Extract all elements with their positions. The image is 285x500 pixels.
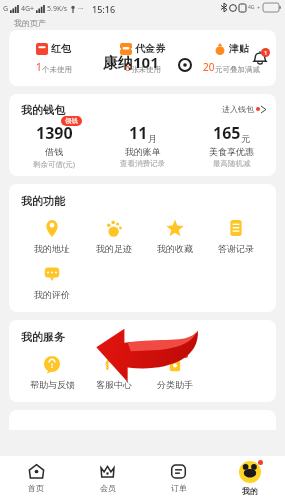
staticText: 领钱	[65, 117, 78, 125]
staticText: 4G	[248, 4, 255, 11]
staticText: 15:16	[92, 3, 116, 15]
staticText: 我的	[242, 486, 258, 496]
staticText: 首页	[28, 483, 44, 493]
staticText: 答谢记录	[218, 243, 254, 254]
staticText: 分类助手	[157, 379, 193, 390]
staticText: 5.9K/s	[47, 4, 68, 14]
staticText: 个未使用	[42, 65, 72, 74]
staticText: 借钱	[45, 146, 63, 157]
staticText: 我的地址	[34, 243, 70, 254]
staticText: ···	[78, 4, 84, 14]
staticText: 张未使用	[131, 65, 161, 74]
staticText: 剩余可借(元)	[33, 159, 75, 169]
button[interactable]: 进入钱包	[222, 104, 266, 114]
staticText: 我的钱包	[21, 103, 65, 117]
button[interactable]: 我的	[214, 456, 285, 500]
button[interactable]: 我的评价	[21, 264, 82, 300]
staticText: +	[257, 4, 261, 12]
staticText: 进入钱包	[222, 104, 254, 114]
staticText: 客服中心	[96, 379, 132, 390]
staticText: 康纳101	[103, 52, 159, 72]
staticText: 元	[241, 133, 250, 144]
staticText: 红包	[51, 42, 71, 55]
staticText: 1	[36, 60, 42, 74]
staticText: 我的页产	[14, 18, 46, 28]
staticText: G	[3, 4, 9, 14]
staticText: 1	[264, 49, 268, 57]
staticText: 8	[125, 60, 131, 74]
staticText: 月	[148, 133, 157, 144]
staticText: 1390	[36, 122, 73, 144]
staticText: 20	[203, 60, 215, 74]
staticText: 165	[213, 122, 241, 144]
button[interactable]: 帮助与反馈	[21, 354, 83, 390]
staticText: 订单	[171, 483, 187, 493]
button[interactable]: 首页	[0, 456, 72, 500]
staticText: 会员	[100, 483, 116, 493]
button[interactable]: 我的足迹	[83, 218, 144, 254]
staticText: 我的评价	[34, 289, 70, 300]
button[interactable]: 我的地址	[21, 218, 83, 254]
button[interactable]: 11	[98, 122, 187, 168]
button[interactable]: 分类助手	[144, 354, 205, 390]
button[interactable]: 客服中心	[83, 354, 144, 390]
staticText: 我的账单	[125, 146, 161, 157]
button[interactable]: 订单	[143, 456, 214, 500]
button[interactable]: 津贴	[187, 30, 276, 86]
button[interactable]: 红包	[9, 30, 98, 86]
staticText: 元可叠加满减	[215, 65, 260, 74]
staticText: 帮助与反馈	[30, 379, 75, 390]
staticText: 4G+	[21, 4, 35, 14]
staticText: 我的功能	[21, 194, 65, 208]
staticText: 查看消费记录	[120, 159, 165, 168]
staticText: 我的收藏	[157, 243, 193, 254]
staticText: 我的足迹	[96, 243, 132, 254]
button[interactable]: 165	[187, 122, 276, 168]
button[interactable]: 答谢记录	[205, 218, 266, 254]
staticText: 美食享优惠	[209, 146, 254, 157]
staticText: 津贴	[229, 42, 249, 55]
button[interactable]: 我的收藏	[144, 218, 205, 254]
staticText: 代金券	[135, 42, 165, 55]
staticText: 11	[129, 122, 148, 144]
staticText: 最高随机减	[213, 159, 251, 168]
staticText: 我的服务	[21, 330, 65, 344]
button[interactable]: 代金券	[98, 30, 187, 86]
button[interactable]: 会员	[72, 456, 143, 500]
button[interactable]: 1390	[9, 122, 98, 169]
button[interactable]: Notifications	[250, 48, 270, 68]
